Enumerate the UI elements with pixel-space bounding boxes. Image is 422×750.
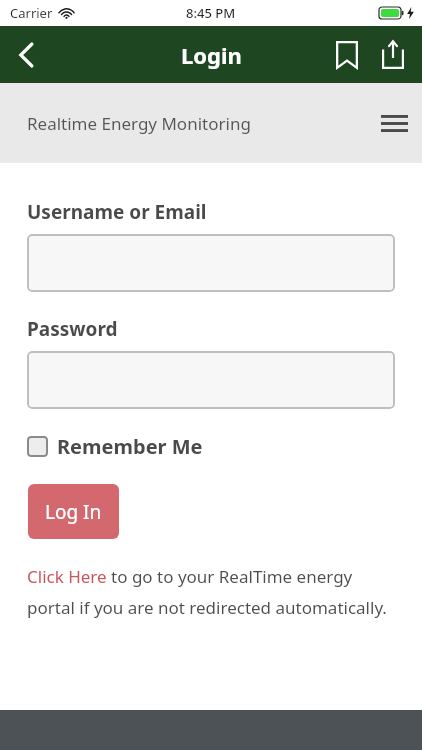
staticText: 8:45 PM [186, 4, 236, 22]
button[interactable]: Remember Me [27, 433, 203, 460]
button[interactable]: Bookmark [324, 26, 370, 83]
staticText: Login [181, 40, 242, 70]
button[interactable]: Menu [366, 95, 422, 151]
staticText: Click Here to go to your RealTime energy… [27, 565, 392, 619]
button[interactable]: Back [0, 26, 52, 83]
button[interactable]: Log In [28, 484, 119, 539]
button[interactable]: Click Here to go to your RealTime energy… [27, 565, 392, 619]
staticText: Carrier [10, 4, 53, 22]
staticText: Username or Email [27, 199, 207, 225]
button[interactable]: Text input [27, 351, 395, 409]
staticText: Log In [45, 499, 102, 525]
staticText: Password [27, 316, 118, 342]
staticText: Realtime Energy Monitoring [27, 112, 251, 135]
button[interactable]: Share [370, 26, 416, 83]
staticText: Remember Me [57, 433, 203, 460]
button[interactable]: Text input [27, 234, 395, 292]
